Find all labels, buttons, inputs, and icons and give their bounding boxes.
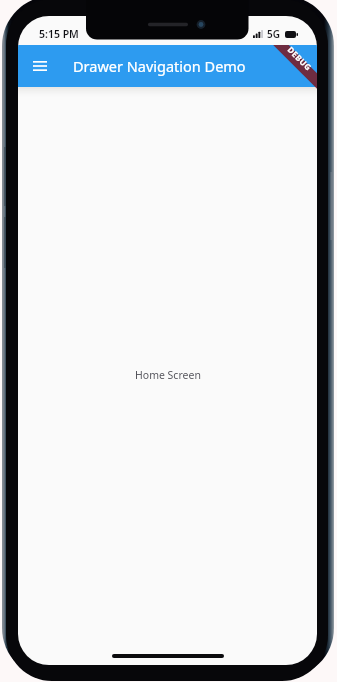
staticText: Drawer Navigation Demo [73, 56, 246, 76]
staticText: DEBUG [285, 44, 314, 73]
staticText: 5G [267, 27, 280, 41]
staticText: 5:15 PM [39, 27, 79, 41]
staticText: Home Screen [135, 368, 201, 382]
button[interactable]: Open navigation drawer [25, 51, 55, 81]
